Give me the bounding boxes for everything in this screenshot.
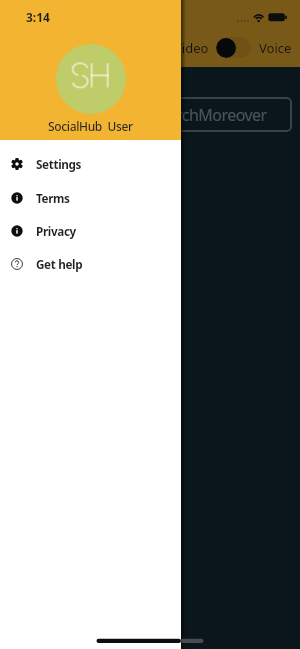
button[interactable]: Terms [0,181,181,214]
button[interactable]: Switch between video and voice [216,37,251,58]
staticText: Settings [36,156,82,172]
button[interactable]: Get help [0,247,181,280]
button[interactable]: SearchMoreover [8,97,292,132]
button[interactable]: Settings [0,147,181,180]
staticText: Video [174,39,209,57]
staticText: 3:14 [26,9,50,25]
staticText: Get help [36,256,83,272]
staticText: Voice [259,39,292,57]
staticText: SearchMoreover [151,104,267,126]
staticText: SocialHub User [48,118,133,134]
staticText: Privacy [36,223,76,239]
staticText: Terms [36,190,70,206]
button[interactable]: Privacy [0,214,181,247]
